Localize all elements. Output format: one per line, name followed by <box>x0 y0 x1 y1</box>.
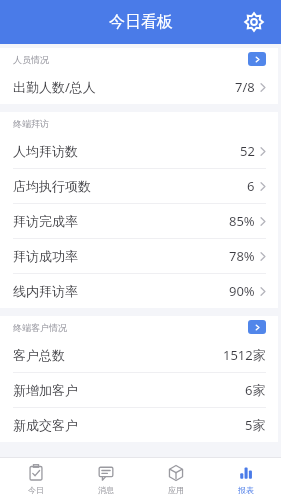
button[interactable]: More <box>248 52 266 66</box>
staticText: 消息 <box>98 485 114 495</box>
staticText: 人均拜访数 <box>13 143 78 159</box>
button[interactable]: 消息 <box>71 458 141 500</box>
button[interactable]: 出勤人数/总人 <box>0 70 278 104</box>
button[interactable]: 客户总数 <box>0 338 278 372</box>
staticText: 6 <box>247 177 255 195</box>
button[interactable]: 线内拜访率 <box>0 274 278 308</box>
staticText: 出勤人数/总人 <box>13 78 96 96</box>
staticText: 90% <box>229 282 255 300</box>
staticText: 6家 <box>245 381 266 399</box>
button[interactable]: 应用 <box>141 458 211 500</box>
staticText: 7/8 <box>235 78 255 96</box>
staticText: 今日 <box>28 485 44 495</box>
staticText: 85% <box>229 212 255 230</box>
staticText: 1512家 <box>223 346 266 364</box>
staticText: 拜访完成率 <box>13 213 78 229</box>
button[interactable]: 人均拜访数 <box>0 134 278 168</box>
staticText: 应用 <box>168 485 184 495</box>
staticText: 78% <box>229 247 255 265</box>
staticText: 新增加客户 <box>13 382 78 398</box>
staticText: 报表 <box>238 485 254 495</box>
staticText: 终端客户情况 <box>13 322 67 333</box>
staticText: 5家 <box>245 416 266 434</box>
button[interactable]: Settings <box>237 5 271 39</box>
button[interactable]: More <box>248 320 266 334</box>
staticText: 52 <box>240 142 255 160</box>
staticText: 店均执行项数 <box>13 178 91 194</box>
staticText: 今日看板 <box>109 12 173 32</box>
button[interactable]: 新成交客户 <box>0 408 278 442</box>
button[interactable]: 拜访完成率 <box>0 204 278 238</box>
staticText: 终端拜访 <box>13 118 49 129</box>
staticText: 客户总数 <box>13 347 65 363</box>
button[interactable]: 今日 <box>0 458 71 500</box>
button[interactable]: 拜访成功率 <box>0 239 278 273</box>
button[interactable]: 店均执行项数 <box>0 169 278 203</box>
button[interactable]: 新增加客户 <box>0 373 278 407</box>
staticText: 新成交客户 <box>13 417 78 433</box>
staticText: 人员情况 <box>13 54 49 65</box>
staticText: 拜访成功率 <box>13 248 78 264</box>
button[interactable]: 报表 <box>211 458 281 500</box>
staticText: 线内拜访率 <box>13 283 78 299</box>
